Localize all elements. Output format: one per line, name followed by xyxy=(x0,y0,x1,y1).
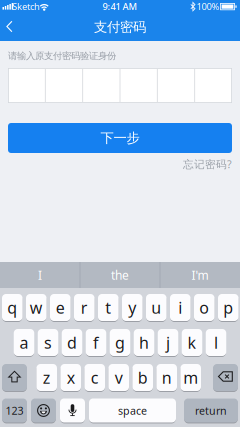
staticText: 忘记密码? xyxy=(183,157,232,171)
staticText: r xyxy=(81,297,88,318)
button[interactable]: e xyxy=(50,293,70,321)
staticText: c xyxy=(91,367,99,388)
staticText: space xyxy=(118,403,147,418)
staticText: n xyxy=(162,367,172,388)
staticText: j xyxy=(166,332,170,353)
staticText: 请输入原支付密码验证身份 xyxy=(8,50,116,62)
staticText: k xyxy=(187,332,196,353)
staticText: a xyxy=(19,332,28,353)
staticText: 支付密码 xyxy=(94,19,146,35)
button[interactable]: j xyxy=(158,328,178,356)
staticText: Sketch xyxy=(12,0,40,13)
staticText: 123 xyxy=(5,403,23,418)
staticText: 下一步 xyxy=(100,130,139,146)
button[interactable]: v xyxy=(108,363,129,391)
staticText: d xyxy=(67,332,77,353)
button[interactable]: Shift xyxy=(2,363,27,391)
staticText: I'm xyxy=(191,267,208,283)
staticText: x xyxy=(67,367,75,388)
button[interactable]: Delete xyxy=(213,363,238,391)
button[interactable]: h xyxy=(134,328,154,356)
button[interactable]: Dictate xyxy=(60,398,85,423)
staticText: the xyxy=(111,267,129,283)
staticText: b xyxy=(138,367,148,388)
button[interactable]: I xyxy=(0,262,79,288)
staticText: q xyxy=(7,297,17,318)
button[interactable]: i xyxy=(170,293,190,321)
button[interactable]: r xyxy=(74,293,94,321)
staticText: o xyxy=(199,297,209,318)
button[interactable]: f xyxy=(86,328,106,356)
staticText: w xyxy=(30,297,43,318)
button[interactable]: Back xyxy=(0,0,18,41)
button[interactable]: p xyxy=(218,293,238,321)
button[interactable]: d xyxy=(62,328,82,356)
staticText: s xyxy=(44,332,52,353)
staticText: 100% xyxy=(196,0,219,13)
staticText: f xyxy=(93,332,99,353)
button[interactable]: q xyxy=(2,293,22,321)
button[interactable]: g xyxy=(110,328,130,356)
button[interactable]: x xyxy=(60,363,81,391)
staticText: i xyxy=(178,297,182,318)
button[interactable]: a xyxy=(14,328,34,356)
button[interactable]: 忘记密码? xyxy=(8,157,232,171)
button[interactable]: b xyxy=(132,363,153,391)
button[interactable]: o xyxy=(194,293,214,321)
staticText: m xyxy=(183,367,198,388)
staticText: l xyxy=(214,332,218,353)
staticText: u xyxy=(151,297,161,318)
button[interactable]: space xyxy=(89,398,176,423)
button[interactable]: c xyxy=(84,363,105,391)
staticText: return xyxy=(195,403,227,418)
button[interactable]: z xyxy=(36,363,57,391)
button[interactable]: the xyxy=(81,262,159,288)
button[interactable]: y xyxy=(122,293,142,321)
button[interactable]: u xyxy=(146,293,166,321)
button[interactable]: return xyxy=(184,398,238,423)
staticText: e xyxy=(56,297,65,318)
staticText: I xyxy=(38,267,42,283)
button[interactable]: n xyxy=(156,363,177,391)
button[interactable]: w xyxy=(26,293,46,321)
button[interactable]: I'm xyxy=(160,262,239,288)
staticText: g xyxy=(115,332,125,353)
button[interactable]: m xyxy=(180,363,201,391)
button[interactable]: 下一步 xyxy=(8,123,232,153)
button[interactable]: l xyxy=(206,328,226,356)
staticText: 9:41 AM xyxy=(102,0,137,13)
button[interactable]: s xyxy=(38,328,58,356)
button[interactable]: Emoji xyxy=(31,398,56,423)
staticText: z xyxy=(43,367,51,388)
staticText: y xyxy=(128,297,136,318)
button[interactable]: k xyxy=(182,328,202,356)
staticText: v xyxy=(115,367,123,388)
staticText: h xyxy=(139,332,149,353)
staticText: p xyxy=(223,297,233,318)
staticText: t xyxy=(105,297,111,318)
button[interactable]: 123 xyxy=(2,398,27,423)
button[interactable]: t xyxy=(98,293,118,321)
